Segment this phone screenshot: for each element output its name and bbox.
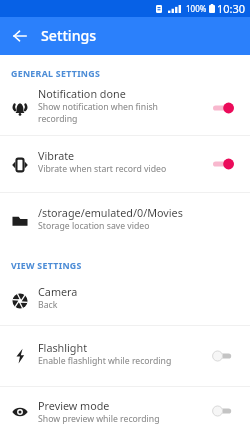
- staticText: Camera: [38, 284, 78, 299]
- button[interactable]: GENERAL SETTINGS: [11, 68, 101, 80]
- button[interactable]: Toggle on: [211, 156, 235, 172]
- staticText: Vibrate when start record video: [38, 163, 167, 175]
- staticText: Vibrate: [38, 148, 75, 163]
- staticText: Flashlight: [38, 340, 88, 355]
- button[interactable]: Toggle on: [211, 100, 235, 116]
- button[interactable]: Toggle off: [211, 348, 235, 364]
- button[interactable]: VIEW SETTINGS: [11, 260, 82, 272]
- button[interactable]: Back: [7, 17, 32, 55]
- button[interactable]: Flashlight: [0, 334, 250, 382]
- staticText: 100%: [186, 3, 207, 14]
- button[interactable]: Toggle off: [211, 403, 235, 419]
- staticText: Show preview while recording: [38, 413, 160, 425]
- button[interactable]: Preview mode: [0, 392, 250, 440]
- button[interactable]: /storage/emulated/0/Movies: [0, 199, 250, 247]
- button[interactable]: Vibrate: [0, 142, 250, 190]
- staticText: VIEW SETTINGS: [11, 260, 82, 272]
- staticText: Preview mode: [38, 398, 110, 413]
- staticText: Back: [38, 299, 58, 311]
- button[interactable]: Camera: [0, 278, 250, 326]
- staticText: Show notification when finish recording: [38, 101, 158, 124]
- staticText: Enable flashlight while recording: [38, 355, 172, 367]
- button[interactable]: Notification done: [0, 80, 250, 128]
- staticText: GENERAL SETTINGS: [11, 68, 101, 80]
- staticText: /storage/emulated/0/Movies: [38, 205, 183, 220]
- staticText: Storage location save video: [38, 220, 150, 232]
- staticText: Notification done: [38, 86, 126, 101]
- staticText: Settings: [41, 26, 97, 45]
- staticText: 10:30: [217, 1, 246, 16]
